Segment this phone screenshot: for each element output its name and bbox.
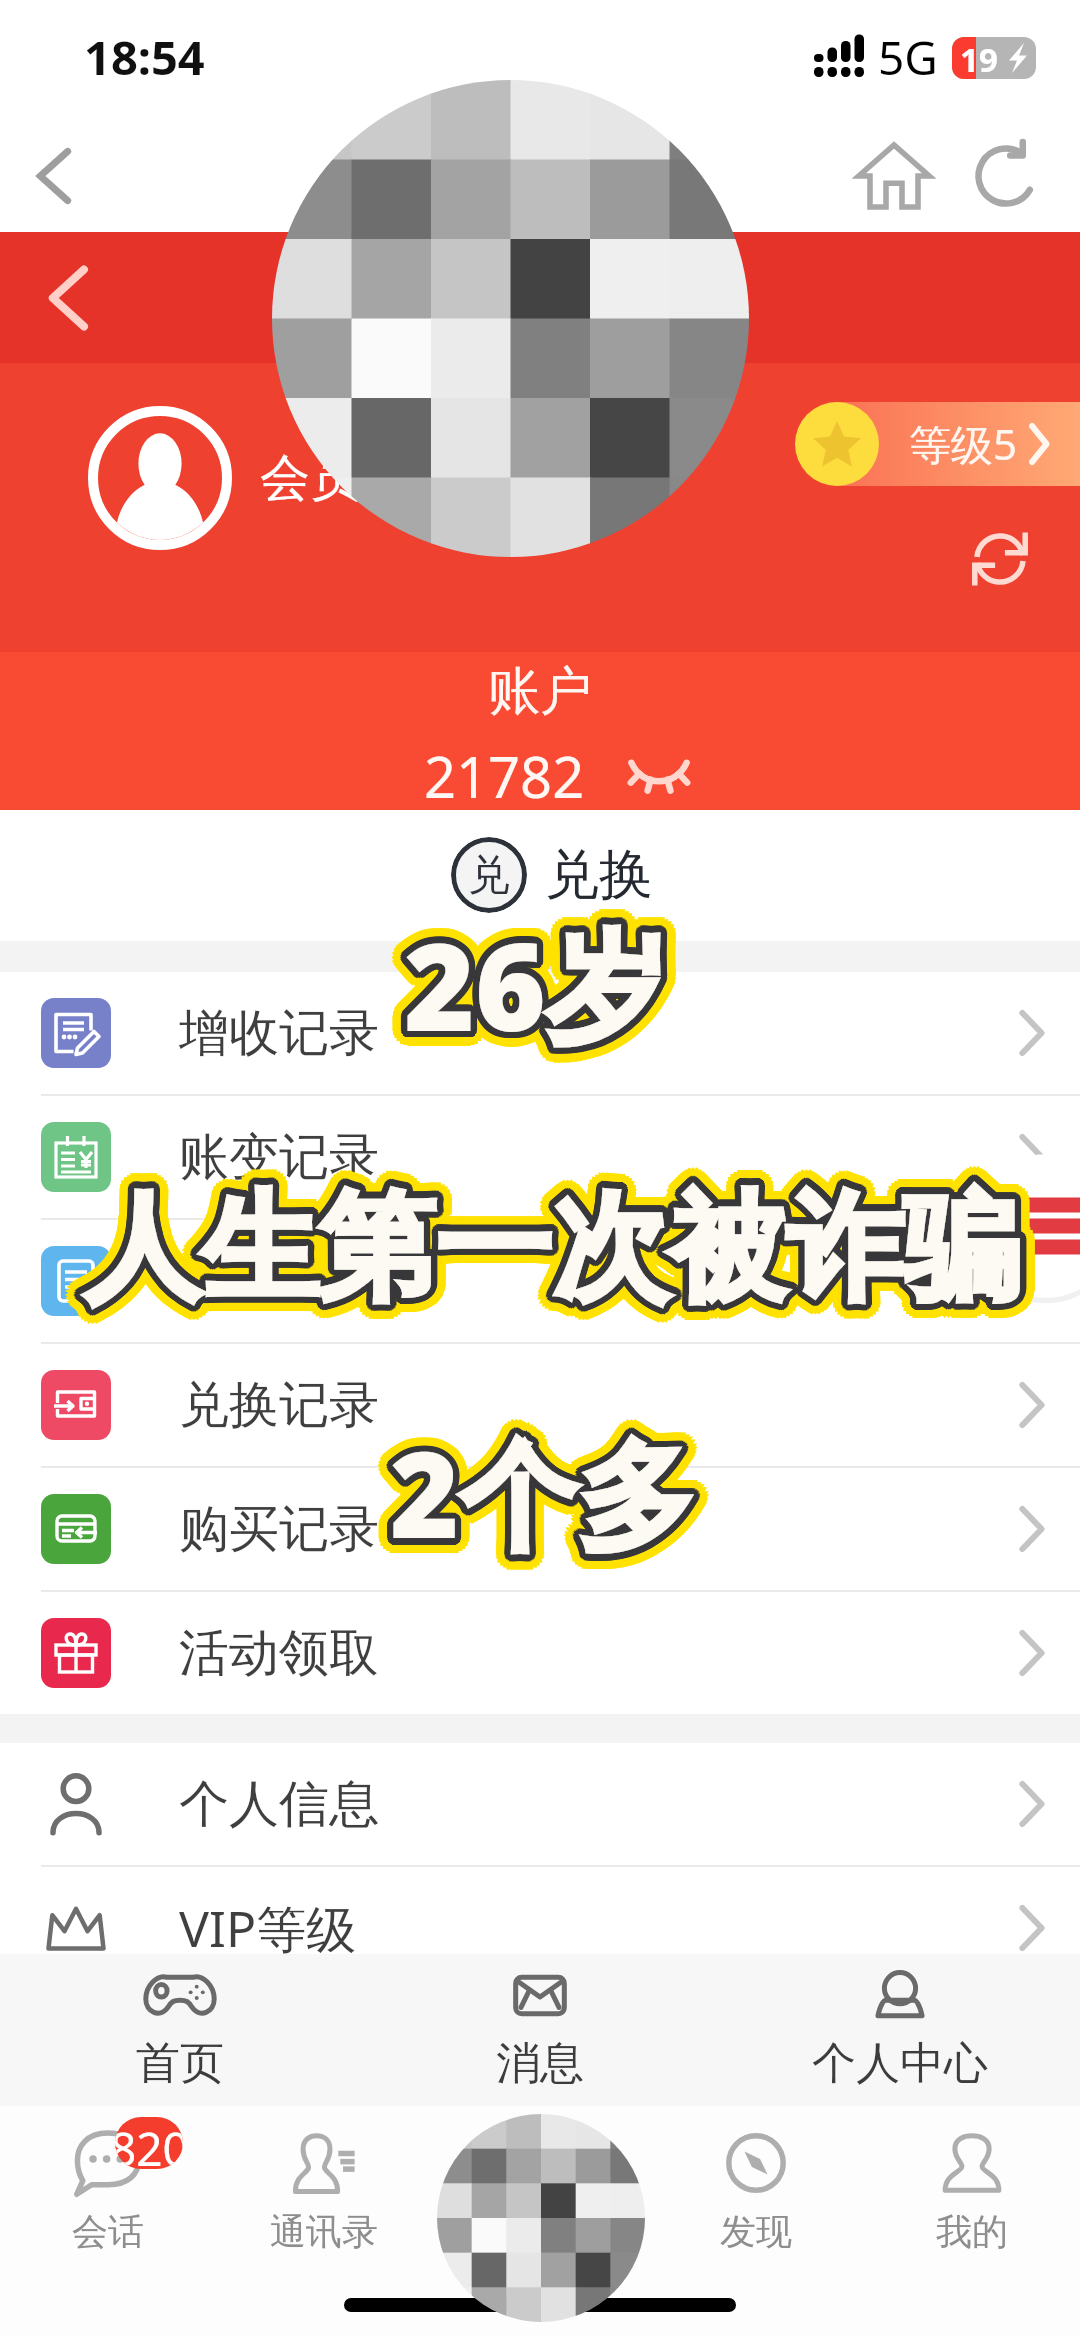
staticText: 消息 <box>496 2036 584 2091</box>
staticText: 会话 <box>72 2209 144 2254</box>
staticText: 我的 <box>936 2209 1008 2254</box>
staticText: 等级5 <box>909 415 1018 472</box>
staticText: 通讯录 <box>270 2209 378 2254</box>
staticText: 18:54 <box>84 25 205 89</box>
button[interactable]: 通讯录 <box>216 2106 432 2276</box>
staticText: 增收记录 <box>179 1002 379 1065</box>
staticText: 购买记录 <box>179 1498 379 1561</box>
staticText: 兑换 <box>545 841 653 909</box>
button[interactable]: 增收记录 <box>0 972 1080 1094</box>
button[interactable]: 兑 <box>451 837 653 913</box>
staticText: 兑 <box>468 849 510 902</box>
staticText: 发现 <box>720 2209 792 2254</box>
button[interactable]: 消息 <box>360 1954 720 2106</box>
button[interactable]: 申请提款 <box>0 1220 1080 1342</box>
button[interactable]: 账变记录 <box>0 1096 1080 1218</box>
button[interactable] <box>797 402 1080 486</box>
staticText: 活动领取 <box>179 1622 379 1685</box>
staticText: 5G <box>878 26 938 89</box>
button[interactable]: 兑换记录 <box>0 1344 1080 1466</box>
button[interactable]: Toggle balance visibility <box>621 738 697 814</box>
button[interactable]: 首页 <box>0 1954 360 2106</box>
button[interactable]: Home <box>844 126 944 226</box>
button[interactable]: 820 <box>0 2106 216 2276</box>
button[interactable]: 个人中心 <box>720 1954 1080 2106</box>
staticText: 820 <box>115 2117 183 2169</box>
button[interactable]: Floating menu <box>968 1148 1080 1304</box>
staticText: VIP等级 <box>179 1894 357 1962</box>
button[interactable]: 发现 <box>648 2106 864 2276</box>
button[interactable]: 购买记录 <box>0 1468 1080 1590</box>
staticText: 会员账号 <box>260 447 460 510</box>
staticText: 21782 <box>424 738 585 814</box>
staticText: 个人信息 <box>179 1773 379 1836</box>
button[interactable]: Back <box>20 250 116 346</box>
staticText: 账变记录 <box>179 1126 379 1189</box>
staticText: 申请提款 <box>179 1250 379 1313</box>
button[interactable]: Back <box>8 130 100 222</box>
button[interactable]: Refresh <box>956 126 1056 226</box>
staticText: 个人中心 <box>812 2036 988 2091</box>
button[interactable]: VIP等级 <box>0 1867 1080 1989</box>
button[interactable]: 活动领取 <box>0 1592 1080 1714</box>
staticText: 19 <box>960 37 998 79</box>
button[interactable]: 我的 <box>864 2106 1080 2276</box>
staticText: 账户 <box>488 659 592 725</box>
button[interactable]: Refresh balance <box>950 509 1050 609</box>
staticText: 兑换记录 <box>179 1374 379 1437</box>
staticText: 首页 <box>136 2036 224 2091</box>
button[interactable]: 个人信息 <box>0 1743 1080 1865</box>
